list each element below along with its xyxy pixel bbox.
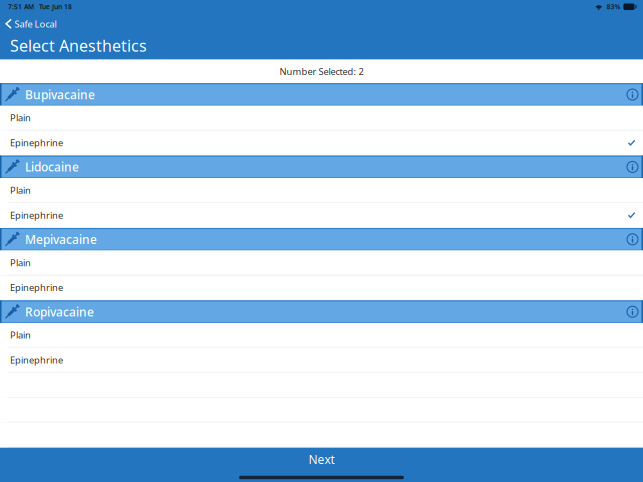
button[interactable]: Ropivacaine — [0, 300, 643, 323]
button[interactable]: Epinephrine — [0, 348, 643, 373]
button[interactable]: Plain — [0, 106, 643, 131]
staticText: Epinephrine — [10, 209, 63, 221]
button[interactable]: Mepivacaine — [0, 228, 643, 251]
staticText: Epinephrine — [10, 354, 63, 366]
button[interactable]: Epinephrine — [0, 275, 643, 300]
staticText: 7:51 AM — [8, 2, 34, 11]
staticText: Plain — [10, 329, 31, 341]
staticText: Plain — [10, 256, 31, 269]
button[interactable]: Epinephrine — [0, 203, 643, 228]
button[interactable]: Next — [251, 448, 391, 471]
staticText: Select Anesthetics — [10, 35, 147, 56]
staticText: Tue Jun 18 — [39, 2, 72, 11]
staticText: Epinephrine — [10, 136, 63, 149]
staticText: Lidocaine — [25, 159, 79, 175]
staticText: Next — [308, 451, 334, 467]
staticText: Bupivacaine — [25, 87, 95, 102]
button[interactable]: Lidocaine — [0, 156, 643, 178]
staticText: Plain — [10, 112, 31, 124]
button[interactable]: Plain — [0, 323, 643, 348]
button[interactable]: Epinephrine — [0, 131, 643, 156]
staticText: Number Selected: 2 — [279, 65, 363, 77]
staticText: 83% — [606, 2, 620, 11]
staticText: Mepivacaine — [25, 231, 97, 247]
staticText: Ropivacaine — [25, 304, 94, 320]
button[interactable]: Plain — [0, 251, 643, 275]
staticText: Plain — [10, 184, 31, 196]
button[interactable]: Plain — [0, 178, 643, 203]
staticText: Safe Local — [14, 18, 56, 30]
staticText: Epinephrine — [10, 281, 63, 294]
button[interactable]: Safe Local — [0, 13, 56, 32]
button[interactable]: Bupivacaine — [0, 83, 643, 106]
